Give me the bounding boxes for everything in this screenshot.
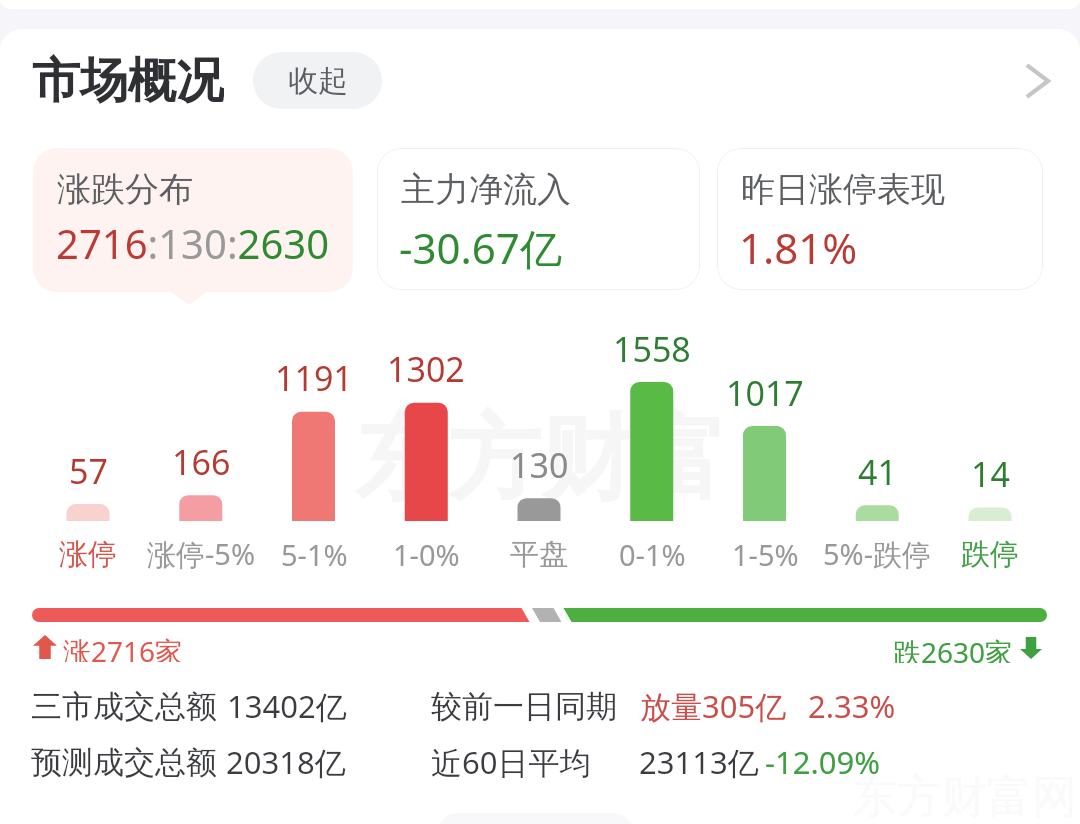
staticText: 2.33% [808,685,896,727]
staticText: 57 [69,448,108,494]
staticText: 主力净流入 [401,168,571,211]
staticText: -30.67亿 [399,219,562,276]
staticText: 130 [510,442,569,488]
button[interactable]: 收起 [253,52,382,109]
staticText: 涨停-5% [147,534,256,574]
button[interactable]: 昨日涨停表现 [717,148,1043,290]
staticText: 1-0% [393,535,460,574]
staticText: 5%-跌停 [823,534,932,574]
staticText: 东方财富 [355,400,727,517]
staticText: 1302 [387,346,465,392]
staticText: 预测成交总额 [31,743,217,782]
staticText: 平盘 [510,536,568,573]
button[interactable]: 涨跌分布 [33,148,353,292]
staticText: 跌2630家 [893,633,1014,663]
staticText: 1191 [275,355,353,401]
staticText: 放量305亿 [640,685,787,727]
staticText: 1558 [613,326,691,372]
staticText: 较前一日同期 [431,687,617,726]
staticText: 1.81% [739,219,858,276]
staticText: 0-1% [619,535,686,574]
staticText: 23113亿 [639,741,759,783]
staticText: 41 [858,449,897,495]
staticText: 14 [971,451,1010,497]
staticText: 跌停 [961,536,1019,573]
staticText: 2716:130:2630 [56,216,330,270]
staticText: 东方财富网 [852,769,1077,824]
button[interactable]: 主力净流入 [377,148,700,290]
staticText: -12.09% [765,741,880,783]
staticText: 1017 [726,370,804,416]
staticText: 涨停 [59,536,117,573]
staticText: 三市成交总额 [31,687,217,726]
staticText: 1-5% [732,535,799,574]
staticText: 市场概况 [32,51,224,109]
staticText: 13402亿 [227,685,347,727]
staticText: 5-1% [281,535,348,574]
staticText: 收起 [288,62,348,100]
button[interactable]: Expand [1008,52,1066,110]
staticText: 涨2716家 [63,632,184,662]
staticText: 20318亿 [226,741,346,783]
staticText: 166 [172,439,231,485]
staticText: 昨日涨停表现 [741,168,945,211]
button[interactable]: 市场概况 [32,51,224,109]
staticText: 涨跌分布 [57,168,193,211]
staticText: 近60日平均 [431,741,591,783]
